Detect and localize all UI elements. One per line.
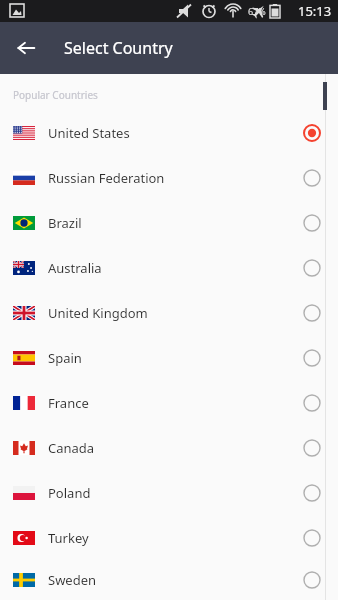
staticText: Australia (48, 259, 102, 277)
staticText: Canada (48, 439, 95, 457)
button[interactable]: Poland (0, 470, 338, 515)
staticText: Select Country (64, 37, 173, 59)
staticText: Brazil (48, 214, 82, 232)
staticText: Turkey (48, 529, 89, 547)
staticText: United Kingdom (48, 304, 148, 322)
staticText: Popular Countries (13, 88, 98, 102)
button[interactable]: Sweden (0, 560, 338, 600)
staticText: United States (48, 124, 130, 142)
staticText: 67% (248, 5, 266, 17)
button[interactable]: Canada (0, 425, 338, 470)
button[interactable]: United Kingdom (0, 290, 338, 335)
staticText: Russian Federation (48, 169, 165, 187)
button[interactable]: Brazil (0, 200, 338, 245)
button[interactable]: Russian Federation (0, 155, 338, 200)
button[interactable]: Australia (0, 245, 338, 290)
button[interactable]: Spain (0, 335, 338, 380)
staticText: Spain (48, 349, 82, 367)
staticText: Sweden (48, 571, 97, 589)
button[interactable]: United States (0, 110, 338, 155)
button[interactable]: France (0, 380, 338, 425)
button[interactable]: Back (8, 30, 44, 66)
button[interactable]: Turkey (0, 515, 338, 560)
staticText: 15:13 (298, 2, 332, 20)
staticText: France (48, 394, 89, 412)
staticText: Poland (48, 484, 91, 502)
